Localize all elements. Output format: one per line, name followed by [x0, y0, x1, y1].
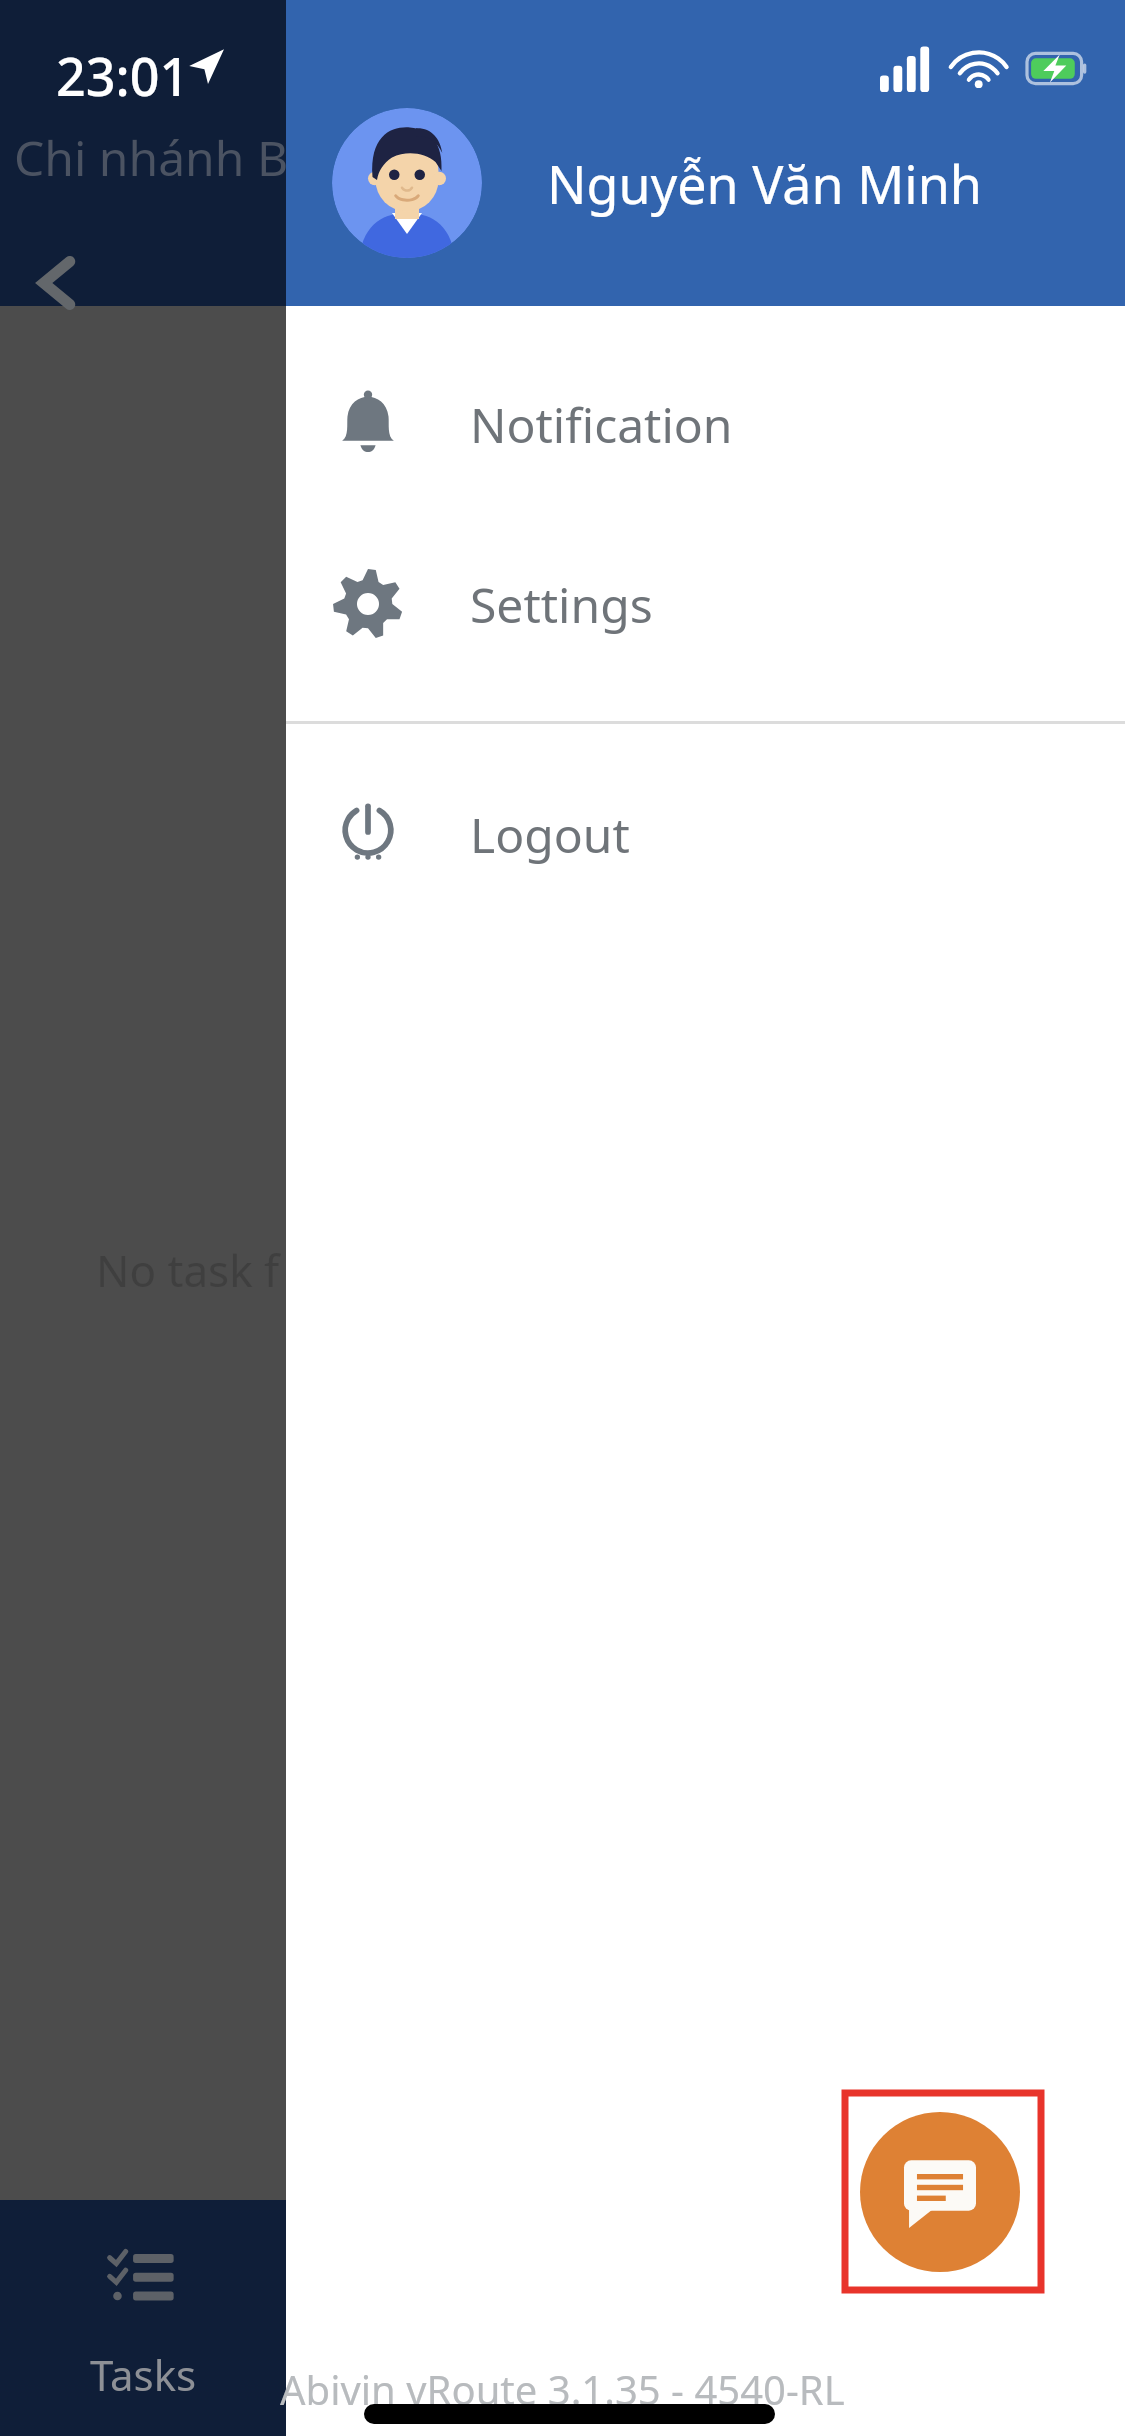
- staticText: Nguyễn Văn Minh: [547, 148, 982, 219]
- staticText: Notification: [470, 392, 733, 457]
- staticText: No task f: [96, 1240, 280, 1300]
- button[interactable]: Notification: [286, 360, 1125, 488]
- staticText: Chi nhánh BR: [14, 125, 318, 190]
- button[interactable]: Logout: [286, 770, 1125, 898]
- button[interactable]: Back: [14, 238, 104, 328]
- staticText: Logout: [470, 802, 630, 867]
- button[interactable]: Tasks: [0, 2200, 286, 2436]
- button[interactable]: Settings: [286, 540, 1125, 668]
- staticText: 23:01: [56, 40, 190, 111]
- staticText: Abivin vRoute 3.1.35 - 4540-RL: [280, 2362, 845, 2416]
- button[interactable]: Chat: [860, 2112, 1020, 2272]
- button[interactable]: Nguyễn Văn Minh: [286, 0, 1125, 306]
- staticText: Settings: [470, 572, 653, 637]
- staticText: Tasks: [90, 2346, 197, 2403]
